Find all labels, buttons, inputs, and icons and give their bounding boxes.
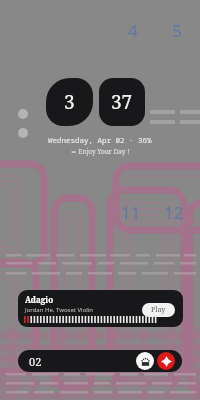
staticText: Jordan He, Twoset Violin [25, 306, 94, 314]
button[interactable]: Add [157, 352, 175, 370]
button[interactable]: 02 [18, 350, 182, 372]
button[interactable]: Play [142, 303, 175, 317]
staticText: 11 [121, 201, 141, 224]
staticText: Adagio [25, 294, 54, 305]
staticText: Play [151, 305, 166, 315]
staticText: Wednesday, Apr 02 · 36% [48, 135, 152, 145]
button[interactable]: Adagio [18, 290, 183, 327]
button[interactable]: Voice assistant [136, 352, 154, 370]
staticText: 12 [164, 201, 184, 224]
staticText: 5 [172, 19, 182, 42]
staticText: 4 [128, 19, 138, 42]
staticText: 3 [64, 89, 75, 115]
staticText: ≈ Enjoy Your Day ! [71, 147, 130, 156]
staticText: 02 [29, 354, 42, 369]
staticText: 37 [111, 89, 133, 115]
